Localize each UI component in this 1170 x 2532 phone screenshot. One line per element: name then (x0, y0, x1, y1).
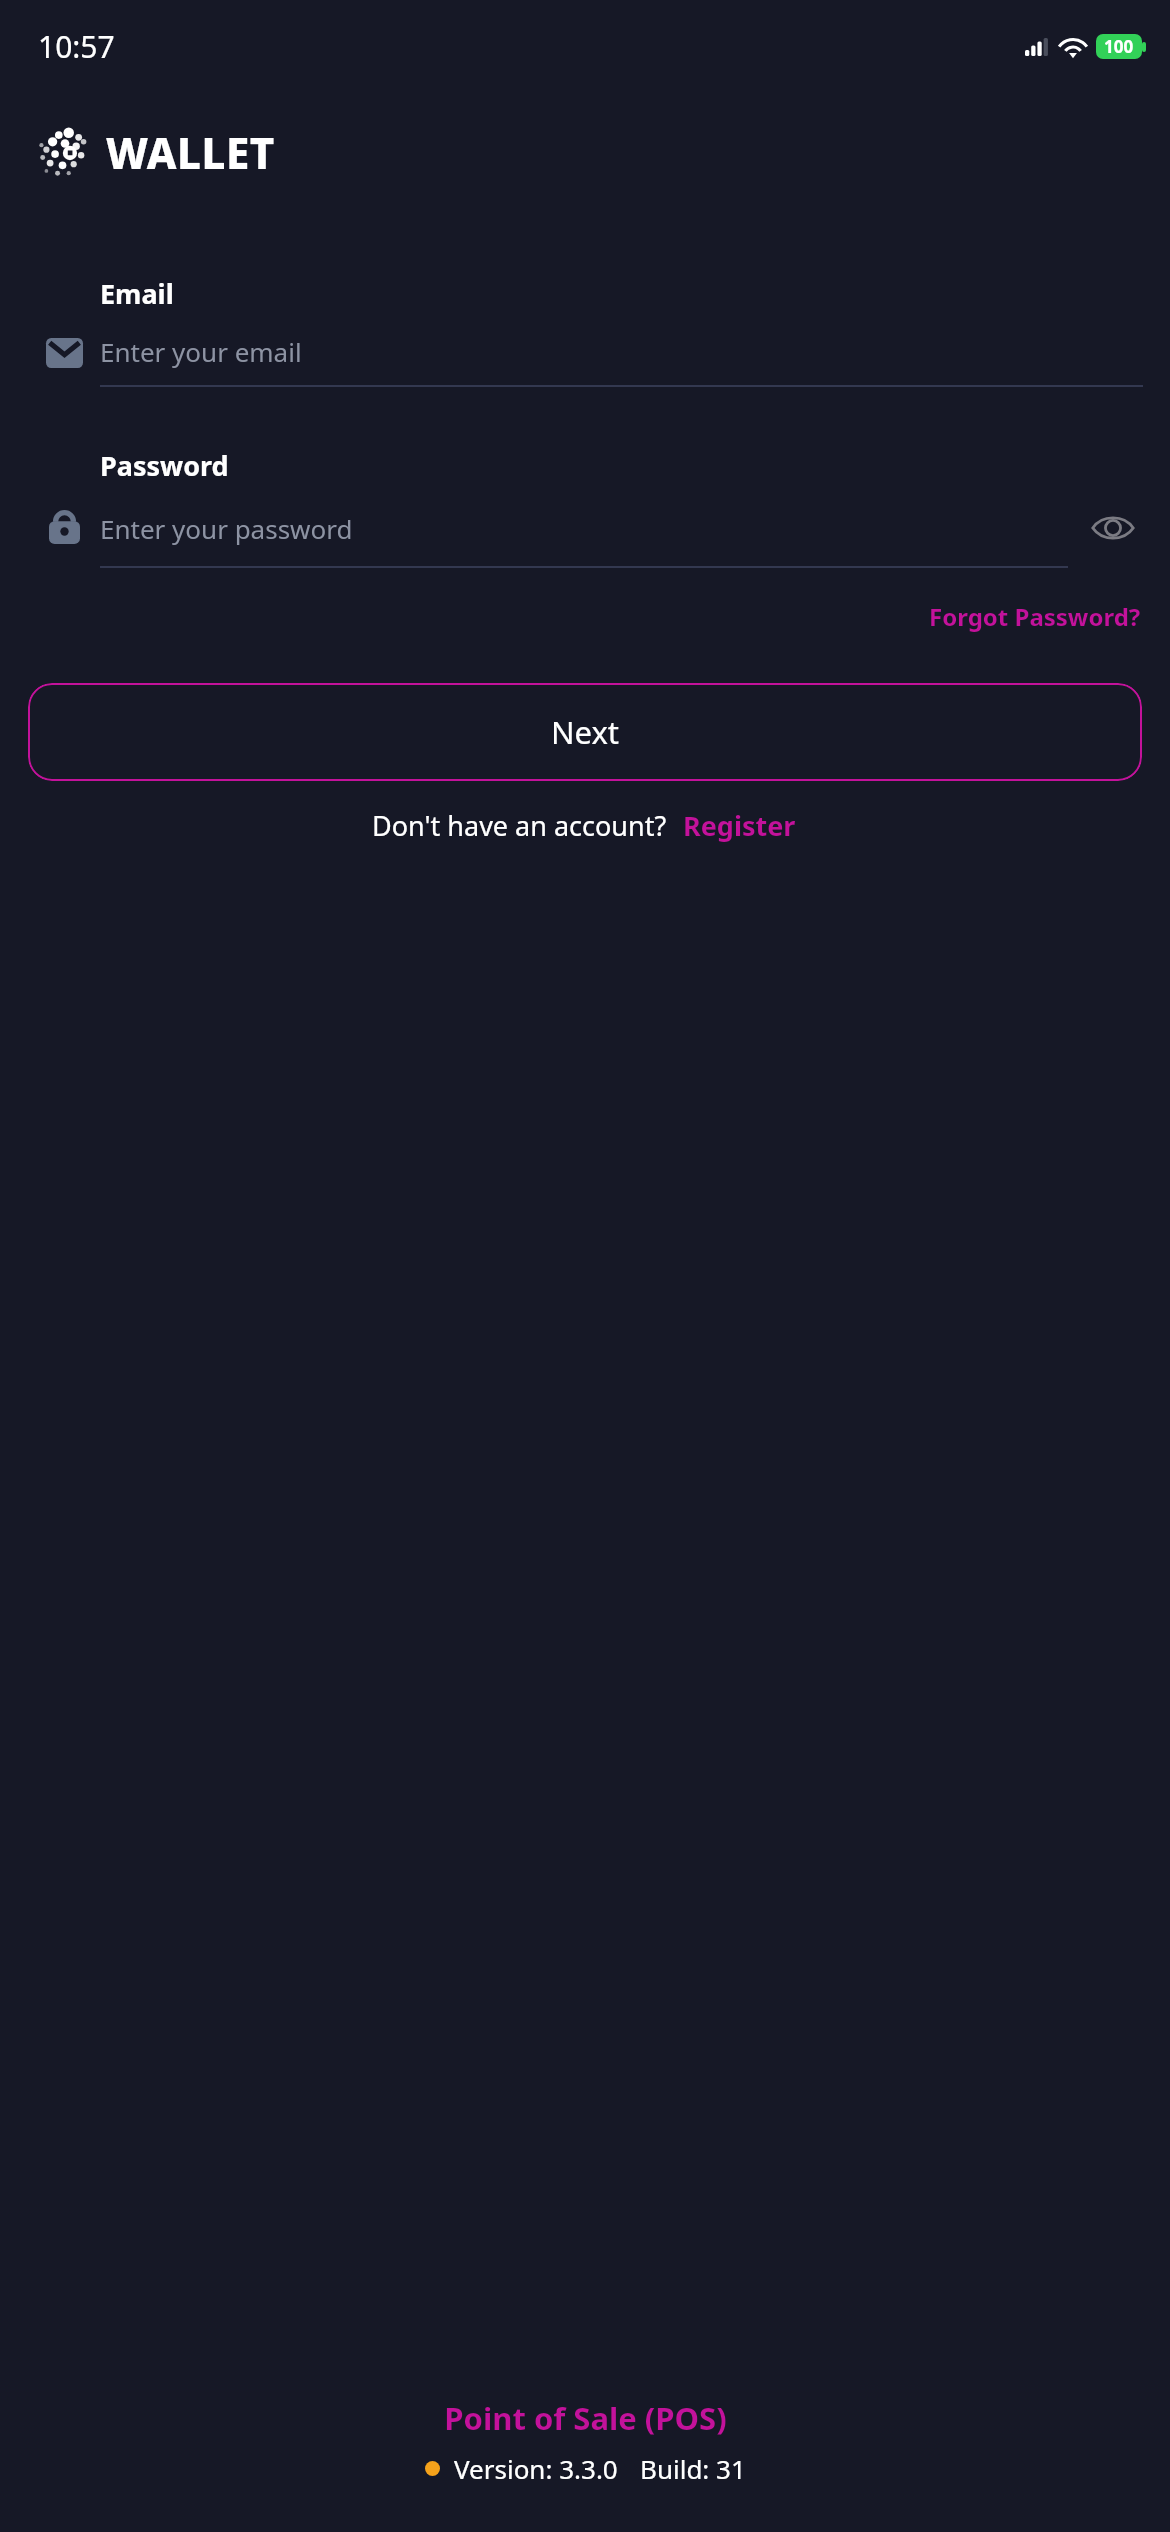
staticText: Point of Sale (POS) (444, 2397, 727, 2439)
staticText: Version: 3.3.0 (454, 2451, 618, 2486)
staticText: WALLET (106, 124, 275, 181)
button[interactable]: Enter your email (100, 334, 1143, 369)
button[interactable]: Forgot Password? (927, 594, 1143, 639)
button[interactable]: Show password (1083, 506, 1143, 550)
button[interactable]: Next (28, 683, 1142, 781)
staticText: Forgot Password? (929, 600, 1141, 633)
staticText: Don't have an account? (372, 807, 667, 844)
staticText: Build: 31 (640, 2451, 746, 2486)
staticText: Next (551, 711, 620, 753)
staticText: 10:57 (38, 26, 115, 67)
staticText: Password (100, 447, 229, 484)
staticText: Register (683, 807, 796, 844)
staticText: Enter your password (100, 511, 353, 546)
staticText: 100 (1104, 35, 1134, 58)
staticText: Enter your email (100, 334, 302, 369)
button[interactable]: Register (681, 801, 798, 850)
staticText: Email (100, 275, 174, 312)
button[interactable]: Enter your password (100, 511, 1083, 546)
